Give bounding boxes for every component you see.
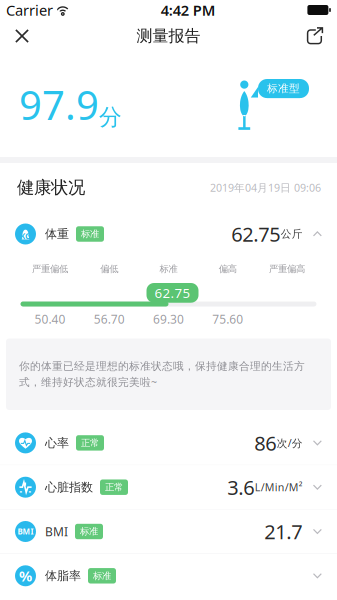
button[interactable]: BMI [0, 510, 337, 553]
staticText: 97.9 [19, 78, 99, 131]
button[interactable]: % [0, 554, 337, 598]
staticText: 标准 [80, 526, 98, 537]
staticText: 严重偏高 [269, 263, 305, 275]
staticText: 标准型 [267, 82, 300, 95]
staticText: 69.30 [153, 311, 184, 327]
button[interactable]: 心脏指数 [0, 465, 337, 509]
staticText: 健康状况 [17, 177, 85, 198]
staticText: 2019年04月19日 09:06 [210, 180, 321, 195]
staticText: 体重 [45, 227, 69, 241]
staticText: BMI [17, 526, 33, 537]
staticText: BMI [45, 523, 68, 539]
staticText: 公斤 [281, 227, 303, 240]
staticText: 62.75 [154, 284, 190, 302]
staticText: 你的体重已经是理想的标准状态哦，保持健康合理的生活方式，维持好状态就很完美啦~ [19, 360, 305, 389]
staticText: 心脏指数 [45, 480, 93, 494]
staticText: 21.7 [264, 518, 302, 545]
staticText: KG [20, 231, 31, 241]
button[interactable]: Close [0, 20, 44, 52]
staticText: 分 [99, 103, 122, 131]
staticText: 50.40 [35, 311, 66, 327]
button[interactable]: Share [293, 20, 337, 52]
staticText: L/Min/M² [255, 480, 303, 494]
button[interactable]: KG [0, 212, 337, 256]
button[interactable]: 心率 [0, 421, 337, 465]
staticText: 偏低 [100, 263, 118, 275]
staticText: 56.70 [94, 311, 125, 327]
staticText: 体脂率 [45, 568, 81, 583]
staticText: 4:42 PM [161, 0, 216, 20]
staticText: 标准 [159, 263, 177, 275]
staticText: 86 [254, 430, 276, 456]
staticText: 正常 [81, 437, 99, 449]
staticText: 测量报告 [136, 26, 200, 46]
staticText: % [19, 566, 32, 586]
staticText: 3.6 [227, 474, 254, 500]
staticText: 次/分 [277, 436, 303, 450]
staticText: 心率 [45, 435, 69, 450]
staticText: 62.75 [231, 221, 280, 247]
staticText: 偏高 [219, 263, 237, 275]
staticText: 标准 [81, 228, 99, 240]
staticText: 严重偏低 [32, 263, 68, 275]
staticText: 75.60 [212, 311, 243, 327]
staticText: Carrier [6, 0, 53, 20]
staticText: 标准 [93, 570, 111, 582]
staticText: 正常 [105, 481, 123, 493]
